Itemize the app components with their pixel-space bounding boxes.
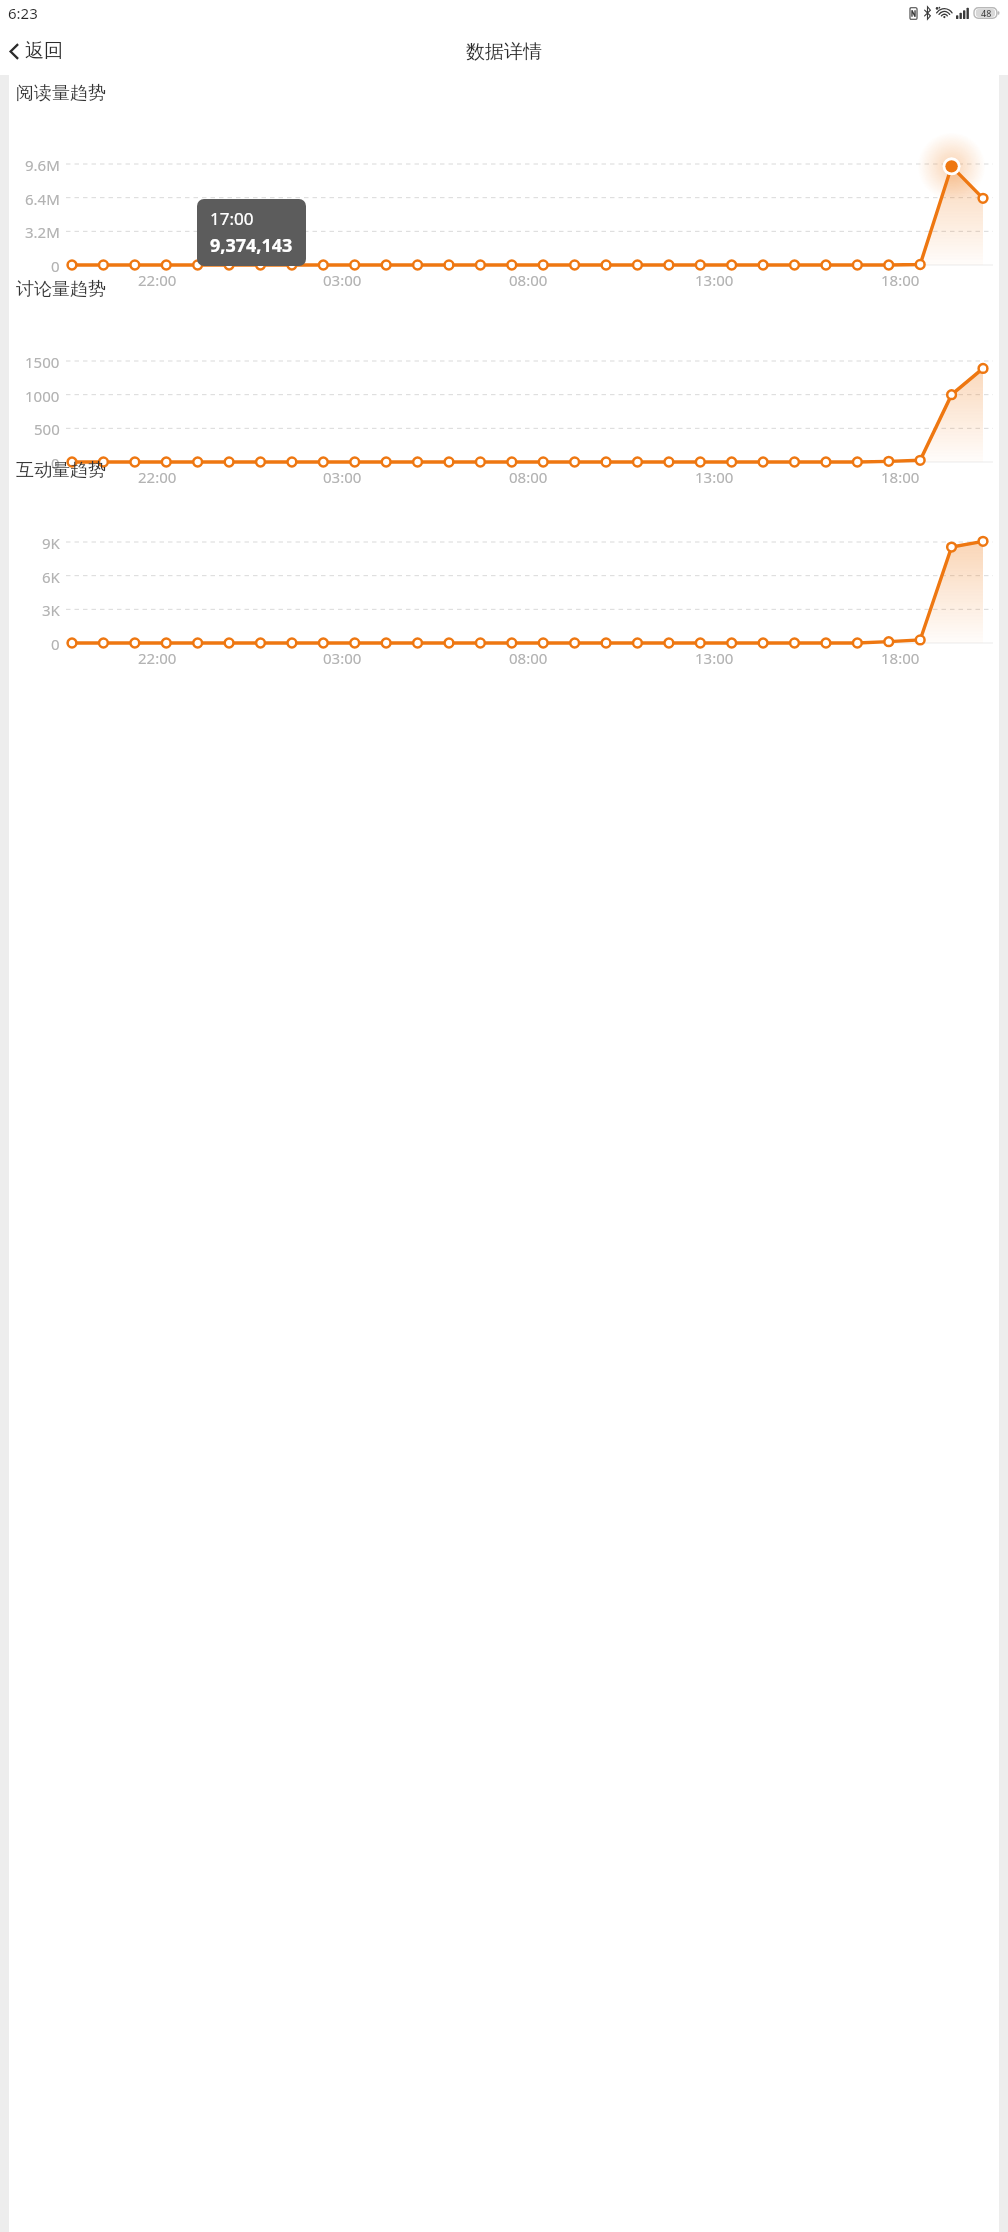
- staticText: 03:00: [323, 467, 362, 487]
- staticText: 9,374,143: [210, 233, 293, 258]
- staticText: 0: [51, 634, 60, 654]
- staticText: 阅读量趋势: [16, 82, 106, 105]
- staticText: 08:00: [509, 648, 548, 668]
- staticText: 18:00: [881, 270, 920, 290]
- staticText: 18:00: [881, 648, 920, 668]
- staticText: 9.6M: [25, 155, 60, 175]
- staticText: 22:00: [138, 648, 177, 668]
- staticText: 17:00: [210, 207, 254, 230]
- staticText: 13:00: [695, 270, 734, 290]
- staticText: 03:00: [323, 270, 362, 290]
- staticText: 1000: [25, 386, 60, 406]
- button[interactable]: Data point 17:00 9,374,143: [197, 199, 306, 266]
- staticText: 03:00: [323, 648, 362, 668]
- staticText: 1500: [25, 352, 60, 372]
- staticText: 22:00: [138, 270, 177, 290]
- staticText: 6.4M: [25, 189, 60, 209]
- staticText: 互动量趋势: [16, 459, 106, 482]
- staticText: 讨论量趋势: [16, 278, 106, 301]
- staticText: 18:00: [881, 467, 920, 487]
- staticText: 返回: [25, 39, 63, 63]
- staticText: 08:00: [509, 270, 548, 290]
- button[interactable]: 返回: [0, 31, 75, 71]
- staticText: 0: [51, 256, 60, 276]
- staticText: 500: [34, 419, 60, 439]
- staticText: 9K: [42, 533, 60, 553]
- staticText: 08:00: [509, 467, 548, 487]
- staticText: 3K: [42, 600, 60, 620]
- staticText: 22:00: [138, 467, 177, 487]
- staticText: 13:00: [695, 648, 734, 668]
- staticText: 0: [51, 453, 60, 473]
- staticText: 数据详情: [466, 40, 542, 64]
- staticText: 6K: [42, 567, 60, 587]
- staticText: 6:23: [8, 3, 38, 23]
- staticText: 13:00: [695, 467, 734, 487]
- staticText: 3.2M: [25, 222, 60, 242]
- staticText: 48: [981, 7, 992, 19]
